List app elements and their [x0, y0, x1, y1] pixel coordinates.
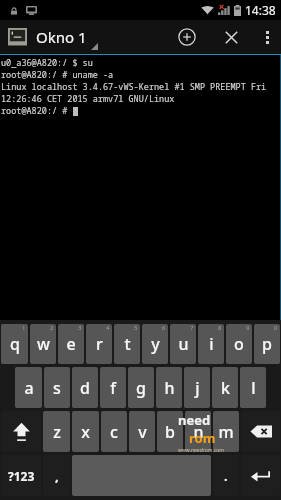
- button[interactable]: c: [101, 411, 127, 452]
- button[interactable]: f: [100, 367, 126, 408]
- staticText: need: [178, 411, 211, 429]
- button[interactable]: g: [128, 367, 154, 408]
- button[interactable]: t: [114, 324, 140, 364]
- staticText: s: [53, 377, 61, 399]
- staticText: 5: [134, 324, 138, 332]
- staticText: t: [124, 333, 131, 355]
- staticText: e: [66, 333, 76, 355]
- button[interactable]: Shift: [1, 411, 41, 452]
- staticText: q: [10, 333, 20, 355]
- button[interactable]: ,: [43, 455, 70, 496]
- staticText: 8: [218, 324, 222, 332]
- staticText: Linux localhost 3.4.67-vWS-Kernel #1 SMP…: [1, 81, 281, 93]
- button[interactable]: v: [129, 411, 155, 452]
- button[interactable]: o: [226, 324, 252, 364]
- staticText: 1: [22, 324, 26, 332]
- staticText: p: [262, 333, 272, 355]
- button[interactable]: j: [184, 367, 210, 408]
- button[interactable]: a: [15, 367, 42, 408]
- staticText: ?123: [8, 468, 35, 484]
- staticText: www.needrom.com: [178, 447, 224, 452]
- button[interactable]: More options: [253, 20, 281, 54]
- button[interactable]: q: [1, 324, 28, 364]
- staticText: x: [81, 421, 90, 443]
- staticText: z: [53, 421, 61, 443]
- button[interactable]: p: [254, 324, 280, 364]
- staticText: m: [218, 421, 234, 443]
- staticText: k: [221, 377, 230, 399]
- staticText: 6: [162, 324, 166, 332]
- button[interactable]: s: [44, 367, 70, 408]
- staticText: d: [80, 377, 90, 399]
- button[interactable]: .: [213, 455, 239, 496]
- button[interactable]: New window: [165, 20, 209, 54]
- staticText: 2: [50, 324, 54, 332]
- staticText: i: [209, 333, 214, 355]
- staticText: j: [195, 377, 200, 399]
- staticText: Okno 1: [36, 27, 87, 47]
- button[interactable]: ?123: [1, 455, 41, 496]
- button[interactable]: n: [185, 411, 211, 452]
- staticText: 12:26:46 CET 2015 armv7l GNU/Linux: [1, 93, 175, 105]
- staticText: 14:38: [245, 2, 276, 18]
- staticText: f: [110, 377, 116, 399]
- staticText: 9: [246, 324, 250, 332]
- staticText: 7: [190, 324, 194, 332]
- staticText: c: [110, 421, 118, 443]
- button[interactable]: k: [212, 367, 238, 408]
- button[interactable]: m: [213, 411, 239, 452]
- button[interactable]: d: [72, 367, 98, 408]
- button[interactable]: l: [240, 367, 266, 408]
- staticText: u0_a36@A820:/ $ su: [1, 57, 93, 69]
- staticText: w: [37, 333, 50, 355]
- staticText: a: [24, 377, 34, 399]
- staticText: root@A820:/ #: [1, 105, 73, 117]
- button[interactable]: Okno 1: [0, 20, 108, 54]
- button[interactable]: Backspace: [241, 411, 280, 452]
- button[interactable]: h: [156, 367, 182, 408]
- button[interactable]: r: [86, 324, 112, 364]
- button[interactable]: u: [170, 324, 196, 364]
- staticText: b: [165, 421, 175, 443]
- staticText: 0: [274, 324, 278, 332]
- button[interactable]: Enter: [241, 455, 280, 496]
- staticText: l: [251, 377, 256, 399]
- staticText: 3: [78, 324, 82, 332]
- button[interactable]: y: [142, 324, 168, 364]
- button[interactable]: w: [30, 324, 56, 364]
- staticText: h: [164, 377, 175, 399]
- button[interactable]: z: [43, 411, 70, 452]
- staticText: rom: [189, 429, 216, 447]
- staticText: root@A820:/ # uname -a: [1, 69, 114, 81]
- staticText: r: [96, 333, 103, 355]
- staticText: n: [193, 421, 204, 443]
- staticText: .: [224, 467, 228, 485]
- staticText: y: [151, 333, 160, 355]
- staticText: v: [138, 421, 147, 443]
- button[interactable]: b: [157, 411, 183, 452]
- button[interactable]: x: [72, 411, 99, 452]
- button[interactable]: i: [198, 324, 224, 364]
- staticText: g: [136, 377, 146, 399]
- button[interactable]: Close window: [209, 20, 253, 54]
- staticText: 4: [106, 324, 110, 332]
- staticText: o: [234, 333, 244, 355]
- staticText: ,: [55, 467, 59, 485]
- button[interactable]: e: [58, 324, 84, 364]
- staticText: u: [178, 333, 189, 355]
